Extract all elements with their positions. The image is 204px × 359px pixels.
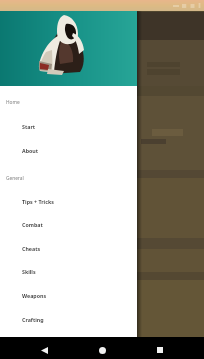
button[interactable]	[0, 0, 137, 86]
button[interactable]: Skills	[0, 260, 137, 283]
button[interactable]: Home	[91, 339, 113, 359]
button[interactable]: Combat	[0, 213, 137, 236]
button[interactable]: Recent apps	[149, 339, 171, 359]
staticText: About	[22, 147, 39, 154]
staticText: Cheats	[22, 245, 41, 252]
staticText: Combat	[22, 221, 43, 228]
staticText: Start	[22, 123, 36, 130]
staticText: Skills	[22, 268, 36, 275]
button[interactable]: Start	[0, 114, 137, 138]
staticText: Tips + Tricks	[22, 198, 54, 205]
button[interactable]: Weapons	[0, 283, 137, 307]
staticText: Home	[6, 99, 20, 106]
button[interactable]: Tips + Tricks	[0, 189, 137, 213]
button[interactable]: About	[0, 138, 137, 162]
button[interactable]: Cheats	[0, 236, 137, 260]
staticText: Crafting	[22, 316, 44, 323]
staticText: General	[6, 175, 24, 182]
button[interactable]: Back	[33, 339, 55, 359]
button[interactable]: Crafting	[0, 307, 137, 331]
staticText: Weapons	[22, 292, 47, 299]
